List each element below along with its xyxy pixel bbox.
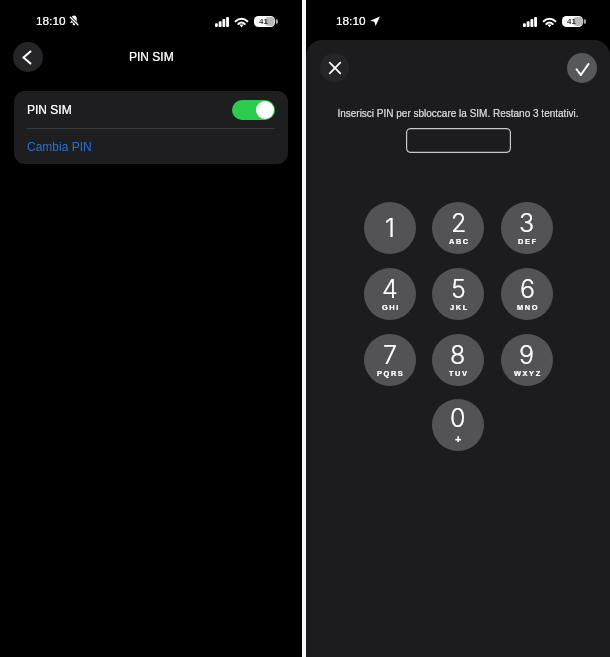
button[interactable]: 6 — [501, 268, 553, 320]
staticText: TUV — [449, 369, 469, 377]
staticText: PQRS — [377, 369, 405, 377]
button[interactable]: 1 — [364, 202, 416, 254]
button[interactable]: PIN SIM toggle, on — [232, 100, 275, 120]
staticText: ABC — [449, 237, 470, 245]
staticText: 1 — [385, 213, 395, 243]
staticText: MNO — [517, 303, 540, 311]
staticText: 18:10 — [336, 14, 366, 27]
staticText: DEF — [518, 237, 538, 245]
staticText: 5 — [451, 274, 466, 304]
button[interactable]: Close — [320, 53, 349, 82]
staticText: 6 — [520, 274, 536, 304]
staticText: GHI — [382, 303, 400, 311]
staticText: PIN SIM — [129, 50, 174, 63]
staticText: JKL — [450, 303, 469, 311]
button[interactable]: Cambia PIN — [14, 129, 288, 164]
button[interactable]: 4 — [364, 268, 416, 320]
button[interactable]: 0 — [432, 399, 484, 451]
staticText: Cambia PIN — [27, 140, 92, 153]
staticText: PIN SIM — [27, 103, 72, 116]
staticText: 18:10 — [36, 14, 66, 27]
staticText: Inserisci PIN per sbloccare la SIM. Rest… — [306, 108, 610, 119]
button[interactable]: PIN input field — [406, 128, 511, 153]
staticText: WXYZ — [514, 369, 542, 377]
button[interactable]: Back — [13, 42, 43, 72]
staticText: 7 — [383, 340, 397, 370]
button[interactable]: 9 — [501, 334, 553, 386]
staticText: 4 — [382, 274, 398, 304]
button[interactable]: 2 — [432, 202, 484, 254]
button[interactable]: 8 — [432, 334, 484, 386]
staticText: 8 — [450, 340, 466, 370]
button[interactable]: PIN SIM — [14, 91, 288, 128]
staticText: 3 — [519, 208, 535, 238]
staticText: 41 — [567, 17, 576, 26]
staticText: 0 — [450, 403, 466, 433]
staticText: + — [455, 433, 462, 445]
staticText: 2 — [451, 208, 467, 238]
staticText: 41 — [259, 17, 268, 26]
staticText: 9 — [519, 340, 535, 370]
button[interactable]: 3 — [501, 202, 553, 254]
button[interactable]: 5 — [432, 268, 484, 320]
button[interactable]: Confirm — [567, 53, 597, 83]
button[interactable]: 7 — [364, 334, 416, 386]
